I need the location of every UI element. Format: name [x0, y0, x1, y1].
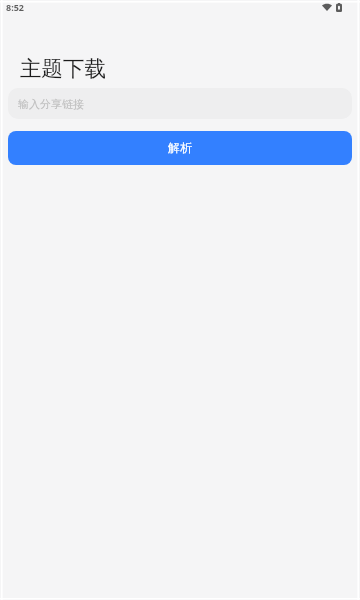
other: Battery — [336, 3, 342, 12]
staticText: 8:52 — [6, 1, 24, 13]
staticText: 主题下载 — [20, 55, 106, 82]
staticText: 解析 — [168, 140, 192, 155]
button[interactable]: 输入分享链接 — [8, 88, 352, 119]
button[interactable]: 解析 — [8, 131, 352, 165]
other: Wi-Fi signal — [322, 4, 332, 11]
staticText: 输入分享链接 — [18, 97, 84, 111]
